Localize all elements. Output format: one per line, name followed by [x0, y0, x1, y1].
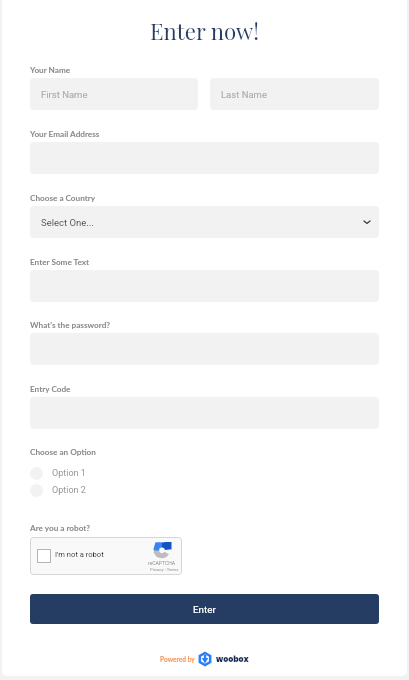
other: Open dropdown: [362, 217, 372, 227]
button[interactable]: Option 1: [30, 467, 379, 480]
staticText: I'm not a robot: [55, 550, 104, 559]
staticText: Enter Some Text: [30, 257, 90, 267]
staticText: Your Email Address: [30, 129, 100, 139]
staticText: Select One...: [41, 217, 94, 228]
staticText: Option 1: [52, 468, 86, 479]
staticText: What's the password?: [30, 320, 111, 330]
staticText: Last Name: [221, 89, 267, 100]
staticText: woobox: [216, 654, 249, 665]
staticText: Powered by: [160, 655, 195, 663]
button[interactable]: I'm not a robot: [30, 537, 182, 575]
staticText: Enter: [193, 604, 216, 615]
staticText: Entry Code: [30, 384, 71, 394]
staticText: Privacy - Terms: [150, 567, 179, 572]
button[interactable]: Option 2: [30, 484, 379, 497]
button[interactable]: Select One...: [30, 206, 379, 238]
staticText: Choose an Option: [30, 447, 96, 457]
staticText: Your Name: [30, 65, 71, 75]
staticText: Choose a Country: [30, 193, 96, 203]
staticText: Are you a robot?: [30, 523, 91, 533]
button[interactable]: Last Name: [210, 78, 379, 110]
button[interactable]: Enter: [30, 594, 379, 624]
staticText: First Name: [41, 89, 88, 100]
staticText: Enter now!: [2, 16, 407, 46]
staticText: reCAPTCHA: [148, 560, 176, 566]
staticText: Option 2: [52, 485, 86, 496]
button[interactable]: First Name: [30, 78, 198, 110]
